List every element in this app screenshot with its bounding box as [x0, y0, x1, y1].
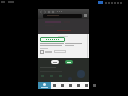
button[interactable] [65, 60, 73, 64]
button[interactable]: More [57, 9, 64, 14]
button[interactable] [43, 14, 82, 18]
button[interactable]: App [60, 83, 65, 88]
button[interactable]: Activities [1, 1, 14, 3]
button[interactable] [51, 60, 59, 64]
button[interactable]: App [52, 83, 57, 88]
button[interactable]: Forward [43, 9, 47, 14]
button[interactable]: Reload [47, 9, 51, 14]
button[interactable]: App [84, 83, 89, 88]
button[interactable]: App [92, 83, 97, 88]
button[interactable]: Home [51, 9, 55, 14]
button[interactable]: Start [38, 82, 51, 89]
button[interactable]: App [68, 83, 73, 88]
button[interactable]: Back [39, 9, 43, 14]
button[interactable]: App [76, 83, 81, 88]
